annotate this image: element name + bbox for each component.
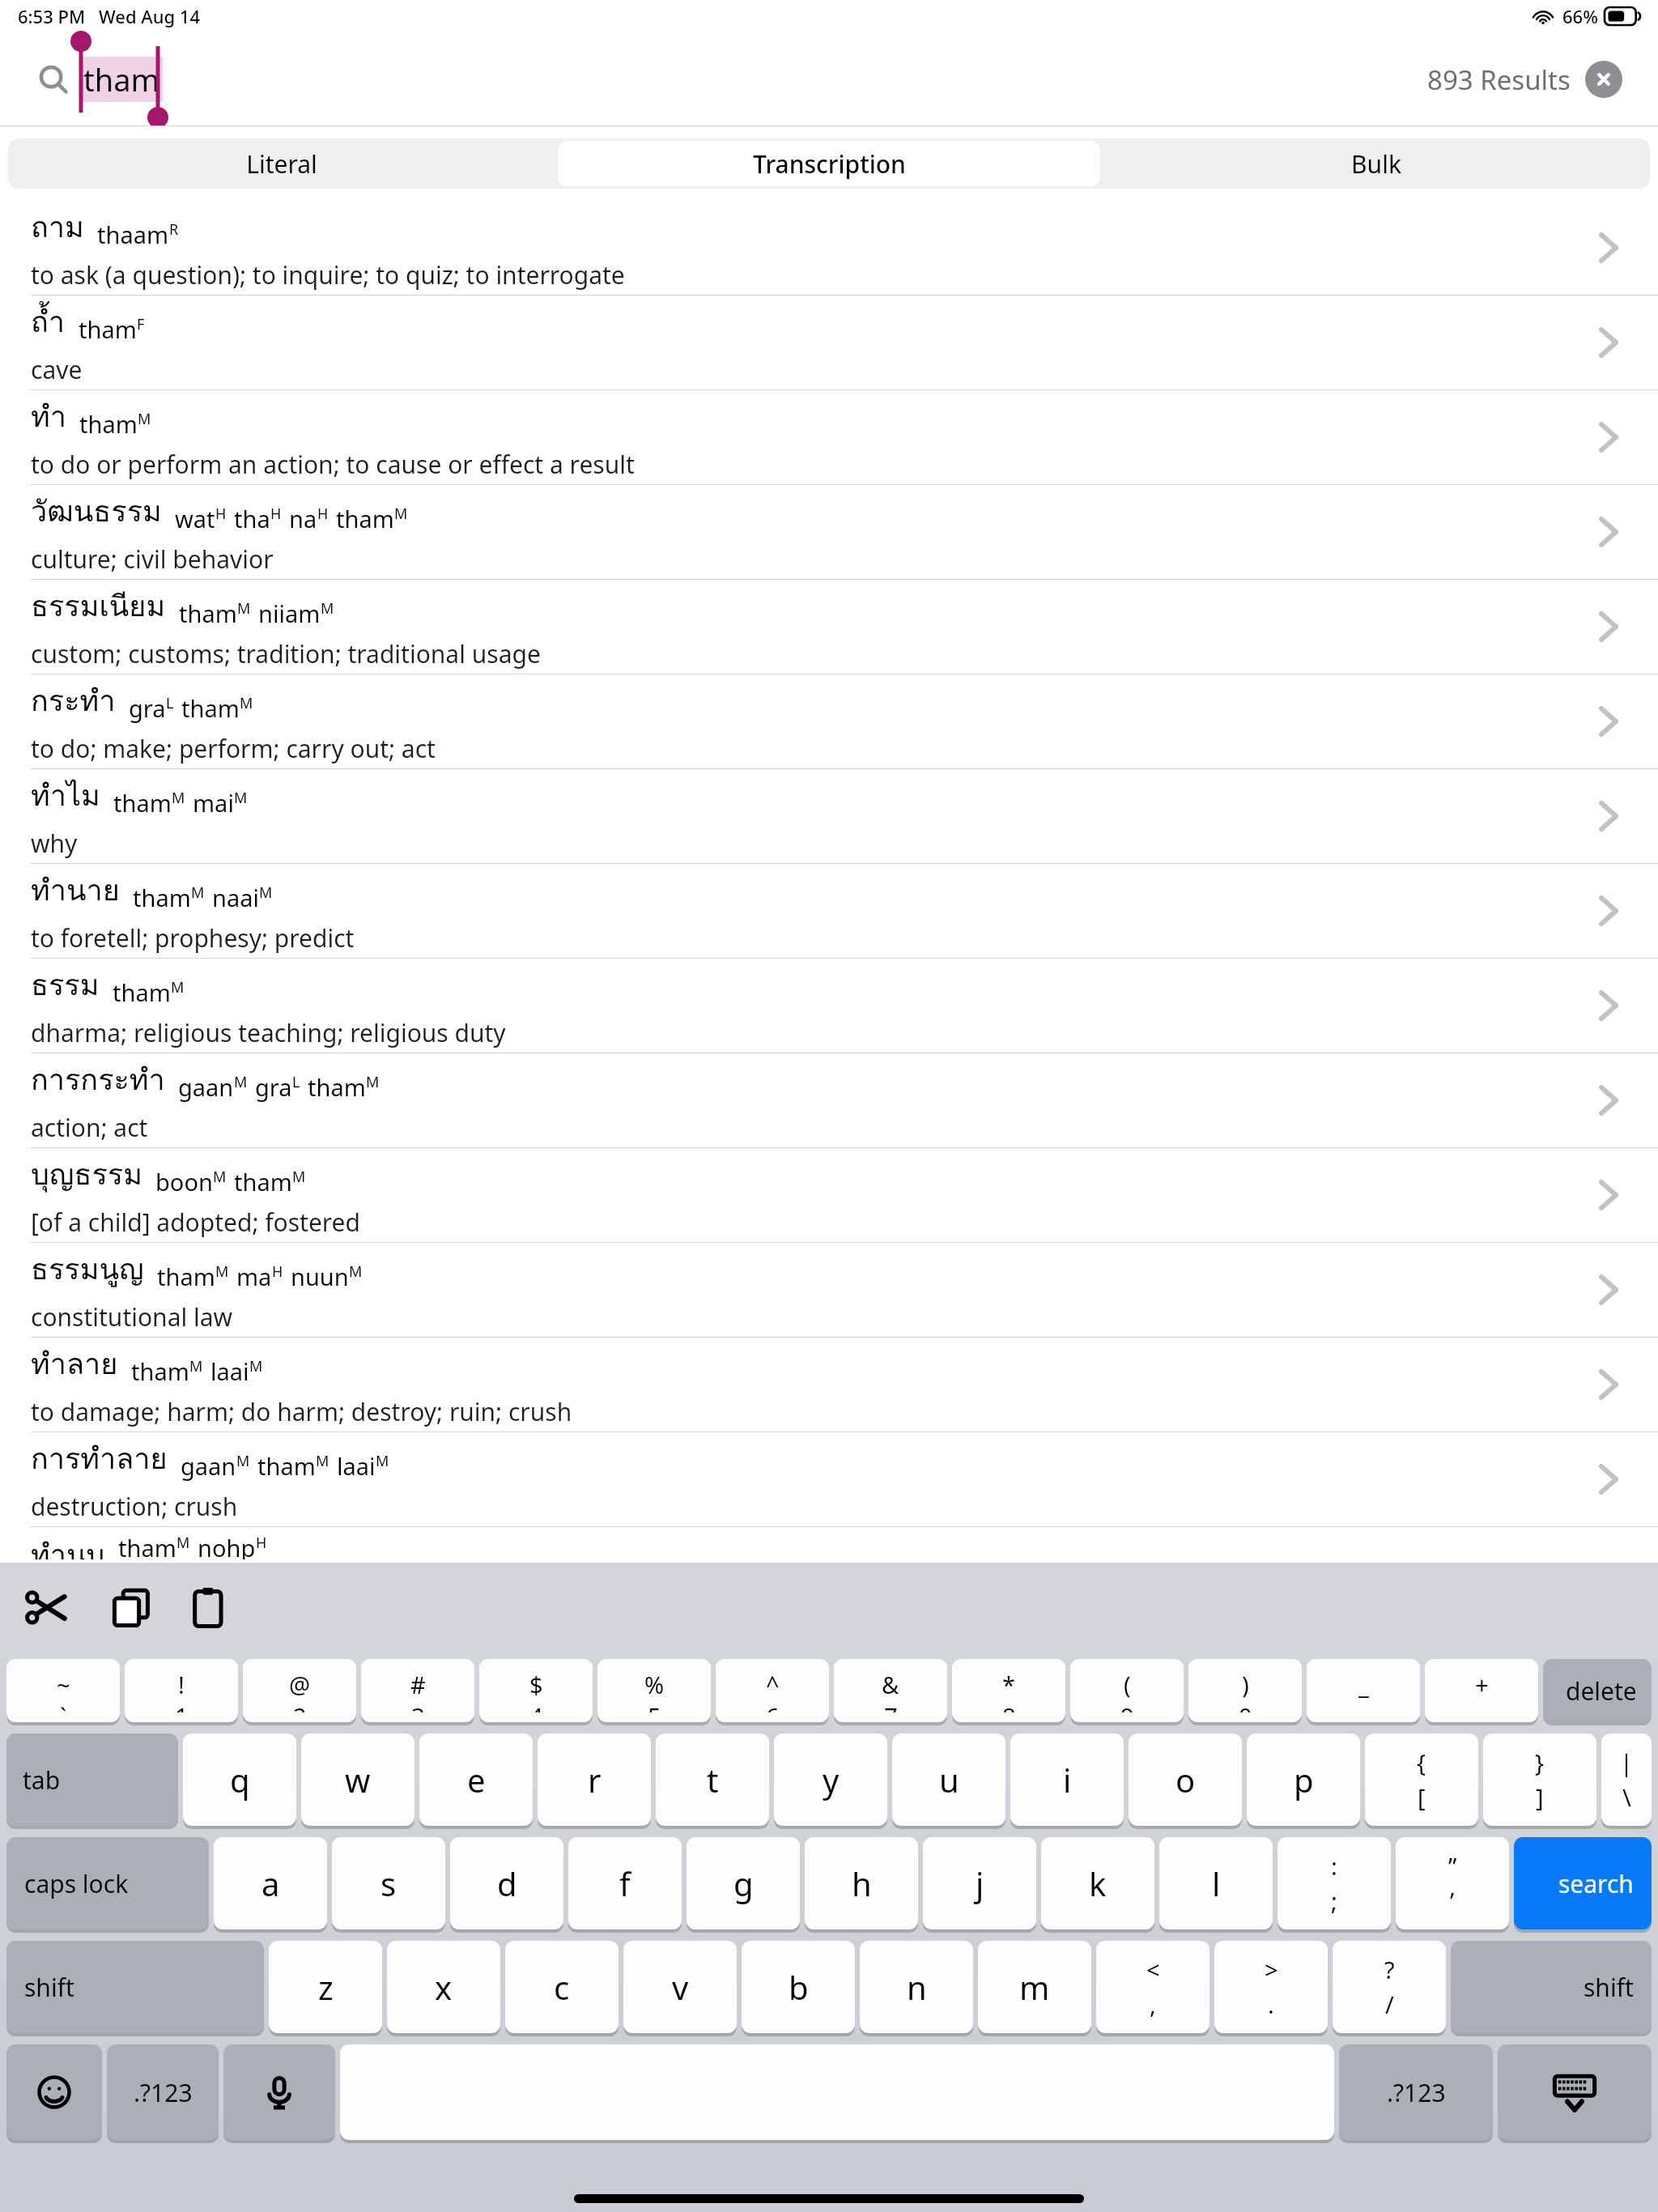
button[interactable]: shift	[1451, 1941, 1652, 2033]
button[interactable]: _	[1307, 1659, 1420, 1722]
button[interactable]: &	[834, 1659, 947, 1722]
button[interactable]: s	[332, 1837, 445, 1929]
staticText: 6	[766, 1700, 780, 1712]
button[interactable]: b	[742, 1941, 855, 2033]
button[interactable]: กระทำ	[0, 674, 1658, 768]
button[interactable]: ?	[1333, 1941, 1446, 2033]
button[interactable]: v	[623, 1941, 737, 2033]
button[interactable]: Paste	[188, 1587, 232, 1631]
staticText: tham	[131, 1355, 189, 1387]
button[interactable]: }	[1483, 1733, 1596, 1826]
button[interactable]: Numbers	[1339, 2044, 1493, 2140]
button[interactable]: |	[1601, 1733, 1652, 1826]
button[interactable]: Dictation	[223, 2044, 335, 2140]
button[interactable]: e	[419, 1733, 533, 1826]
button[interactable]: +	[1425, 1659, 1538, 1722]
staticText: 6:53 PM	[18, 4, 86, 28]
button[interactable]: ธรรมเนียม	[0, 580, 1658, 674]
button[interactable]: ถาม	[0, 201, 1658, 295]
button[interactable]: g	[687, 1837, 800, 1929]
button[interactable]: ทำ	[0, 390, 1658, 484]
staticText: e	[467, 1758, 486, 1802]
button[interactable]: Copy	[110, 1587, 154, 1631]
staticText: c	[554, 1965, 570, 2009]
staticText: ทำนาย	[31, 867, 120, 913]
button[interactable]: Numbers	[107, 2044, 219, 2140]
staticText: nuun	[291, 1261, 349, 1292]
button[interactable]: วัฒนธรรม	[0, 485, 1658, 579]
button[interactable]: %	[597, 1659, 711, 1722]
button[interactable]: <	[1096, 1941, 1209, 2033]
button[interactable]: caps lock	[6, 1837, 209, 1929]
button[interactable]: บุญธรรม	[0, 1148, 1658, 1242]
button[interactable]: Literal	[11, 141, 553, 186]
button[interactable]: l	[1159, 1837, 1273, 1929]
button[interactable]: (	[1070, 1659, 1184, 1722]
button[interactable]: ธรรมนูญ	[0, 1243, 1658, 1337]
button[interactable]: การกระทำ	[0, 1053, 1658, 1147]
button[interactable]: j	[923, 1837, 1036, 1929]
button[interactable]: shift	[6, 1941, 264, 2033]
button[interactable]: ถ้ำ	[0, 296, 1658, 389]
staticText: M	[349, 1261, 363, 1282]
button[interactable]: r	[538, 1733, 651, 1826]
staticText: tham	[118, 1532, 176, 1559]
staticText: k	[1089, 1861, 1107, 1905]
button[interactable]: ทำนาย	[0, 864, 1658, 958]
button[interactable]: ”	[1396, 1837, 1509, 1929]
button[interactable]: m	[978, 1941, 1091, 2033]
button[interactable]: f	[568, 1837, 682, 1929]
button[interactable]: x	[387, 1941, 500, 2033]
button[interactable]: tab	[6, 1733, 178, 1826]
button[interactable]: a	[214, 1837, 327, 1929]
button[interactable]: k	[1041, 1837, 1154, 1929]
staticText: laai	[210, 1355, 249, 1387]
button[interactable]: delete	[1543, 1659, 1652, 1722]
button[interactable]: i	[1010, 1733, 1124, 1826]
staticText: M	[240, 693, 253, 713]
button[interactable]: y	[774, 1733, 887, 1826]
button[interactable]: >	[1214, 1941, 1328, 2033]
button[interactable]: ทำไม	[0, 769, 1658, 863]
button[interactable]: *	[952, 1659, 1065, 1722]
staticText: ทำลาย	[31, 1341, 118, 1387]
staticText: to do; make; perform; carry out; act	[31, 732, 436, 765]
button[interactable]: n	[860, 1941, 973, 2033]
button[interactable]: ^	[716, 1659, 829, 1722]
button[interactable]: o	[1129, 1733, 1242, 1826]
button[interactable]: :	[1278, 1837, 1391, 1929]
button[interactable]: ทำลาย	[0, 1338, 1658, 1431]
button[interactable]: u	[892, 1733, 1005, 1826]
button[interactable]: {	[1365, 1733, 1478, 1826]
button[interactable]: $	[479, 1659, 593, 1722]
button[interactable]: d	[450, 1837, 563, 1929]
button[interactable]: )	[1188, 1659, 1302, 1722]
button[interactable]: #	[361, 1659, 474, 1722]
button[interactable]: ธรรม	[0, 959, 1658, 1053]
button[interactable]: Cut	[24, 1587, 68, 1631]
staticText: v	[672, 1965, 689, 2009]
button[interactable]: !	[125, 1659, 238, 1722]
button[interactable]: Transcription	[558, 141, 1100, 186]
button[interactable]: Clear search	[1585, 61, 1622, 98]
button[interactable]: search	[1514, 1837, 1652, 1929]
button[interactable]: q	[183, 1733, 296, 1826]
button[interactable]: t	[656, 1733, 769, 1826]
button[interactable]	[18, 45, 1640, 114]
staticText: M	[213, 1167, 227, 1187]
button[interactable]: w	[301, 1733, 414, 1826]
staticText: M	[236, 1451, 250, 1471]
button[interactable]: Emoji	[6, 2044, 102, 2140]
button[interactable]: @	[243, 1659, 356, 1722]
button[interactable]: p	[1247, 1733, 1360, 1826]
button[interactable]: c	[505, 1941, 619, 2033]
button[interactable]: h	[805, 1837, 918, 1929]
button[interactable]: z	[269, 1941, 382, 2033]
button[interactable]: ~	[6, 1659, 120, 1722]
button[interactable]: การทำลาย	[0, 1432, 1658, 1526]
staticText: delete	[1566, 1674, 1637, 1708]
button[interactable]: Bulk	[1105, 141, 1647, 186]
button[interactable]: Hide keyboard	[1498, 2044, 1652, 2140]
button[interactable]: Space	[340, 2044, 1334, 2140]
